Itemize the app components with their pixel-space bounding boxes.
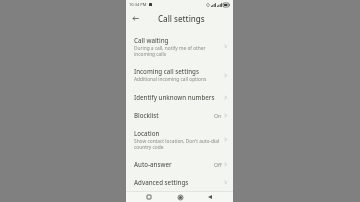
staticText: Identify unknown numbers [134, 93, 215, 101]
staticText: Call waiting [134, 36, 169, 44]
staticText: 10:34 PM [129, 2, 147, 7]
button[interactable]: Home [173, 192, 187, 202]
staticText: Call settings [158, 13, 205, 24]
button[interactable]: Back [203, 192, 217, 202]
staticText: Auto-answer [134, 160, 172, 168]
staticText: Advanced settings [134, 178, 189, 186]
button[interactable]: Incoming call settings [126, 62, 233, 88]
button[interactable]: Auto-answer [126, 155, 233, 173]
staticText: Additional incoming call options [134, 76, 207, 83]
staticText: Blocklist [134, 111, 159, 119]
button[interactable]: Blocklist [126, 106, 233, 124]
staticText: During a call, notify me of other incomi… [134, 45, 224, 57]
staticText: On [214, 112, 222, 119]
staticText: Incoming call settings [134, 67, 199, 75]
staticText: Show contact location, Don't auto-dial c… [134, 138, 224, 150]
button[interactable]: Call waiting [126, 31, 233, 62]
button[interactable]: Back [130, 13, 141, 24]
staticText: Off [214, 161, 222, 168]
button[interactable]: Recents [142, 192, 156, 202]
button[interactable]: Advanced settings [126, 173, 233, 191]
staticText: Location [134, 129, 160, 137]
button[interactable]: Location [126, 124, 233, 155]
button[interactable]: Identify unknown numbers [126, 88, 233, 106]
